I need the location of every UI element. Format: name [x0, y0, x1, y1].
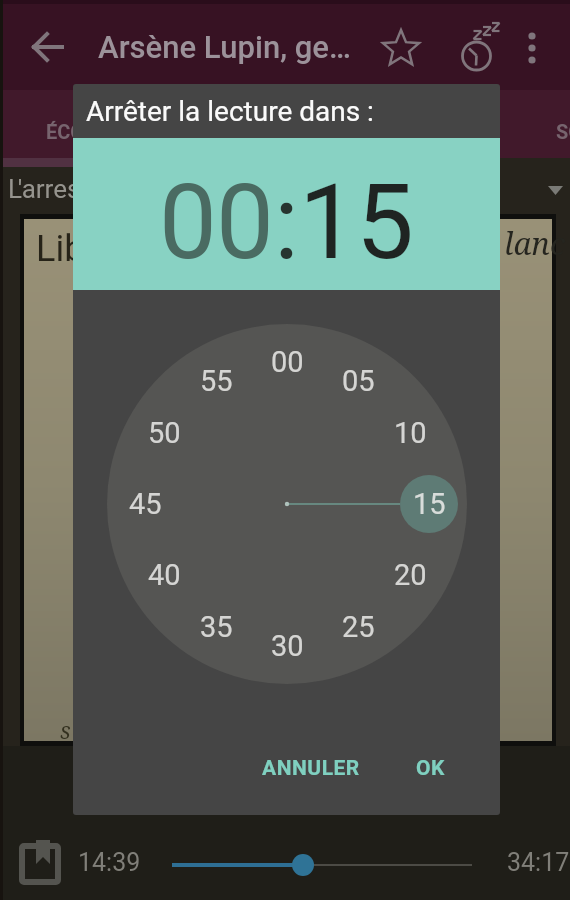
button[interactable] [0, 90, 285, 158]
staticText: 15 [299, 162, 414, 283]
staticText: 20 [394, 558, 427, 592]
staticText: : [274, 162, 299, 283]
staticText: 40 [148, 558, 181, 592]
staticText: lanc [504, 222, 566, 264]
button[interactable] [292, 854, 314, 876]
staticText: 55 [200, 364, 233, 398]
button[interactable] [285, 90, 570, 158]
staticText: Arsène Lupin, ge… [98, 29, 351, 65]
staticText: OK [416, 756, 445, 781]
staticText: 25 [342, 610, 375, 644]
button[interactable] [18, 838, 62, 886]
staticText: 10 [394, 416, 427, 450]
staticText: ÉCOUTER [46, 120, 134, 143]
staticText: SOMMAIRE [556, 120, 570, 143]
staticText: s [60, 714, 71, 745]
button[interactable] [400, 475, 458, 533]
staticText: L'arrestation d'Arsène Lupin [8, 174, 322, 204]
staticText: ANNULER [262, 756, 360, 781]
staticText: 45 [129, 487, 162, 521]
button[interactable] [378, 25, 424, 71]
button[interactable]: OK [400, 742, 460, 794]
staticText: 30 [271, 629, 304, 663]
staticText: 00 [271, 345, 304, 379]
staticText: 15 [413, 487, 446, 521]
staticText: 35 [200, 610, 233, 644]
button[interactable] [450, 10, 510, 75]
staticText: Librivox [36, 228, 161, 270]
staticText: 00 [159, 162, 274, 283]
staticText: 50 [148, 416, 181, 450]
staticText: Arrêter la lecture dans : [86, 95, 374, 128]
staticText: 05 [342, 364, 375, 398]
button[interactable]: ANNULER [251, 742, 371, 794]
staticText: 14:39 [78, 848, 141, 877]
button[interactable] [512, 25, 552, 71]
staticText: 34:17 [507, 848, 570, 877]
button[interactable] [20, 20, 76, 76]
